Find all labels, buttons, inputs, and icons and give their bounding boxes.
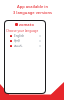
button[interactable]: తెలుగు bbox=[5, 43, 45, 48]
staticText: Choose your language bbox=[6, 29, 39, 33]
staticText: English bbox=[14, 34, 25, 38]
button[interactable]: हिन्दी bbox=[5, 38, 45, 43]
staticText: zomato bbox=[19, 22, 35, 27]
staticText: हिन्दी bbox=[14, 39, 20, 43]
button[interactable]: App logo bbox=[5, 22, 45, 27]
staticText: తెలుగు bbox=[14, 44, 23, 48]
other: App logo bbox=[15, 23, 18, 26]
staticText: App available in bbox=[17, 4, 48, 9]
staticText: 3 language versions bbox=[13, 10, 52, 15]
button[interactable]: English bbox=[5, 33, 45, 38]
